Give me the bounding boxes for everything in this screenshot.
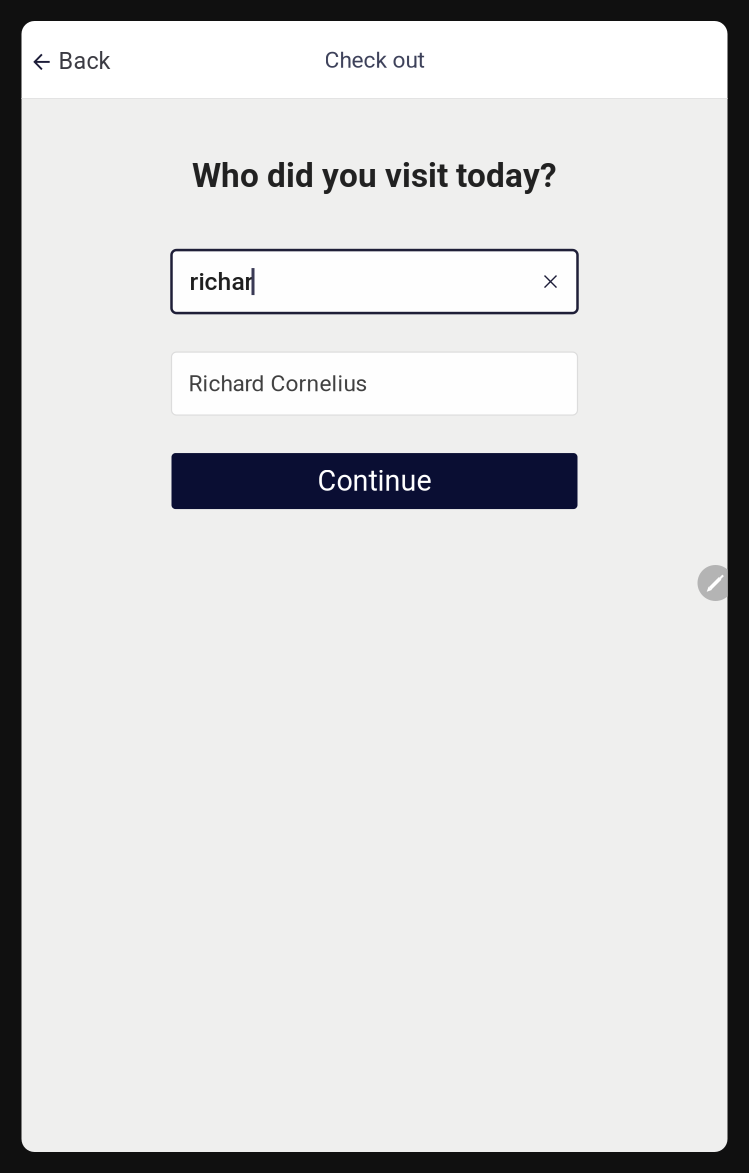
staticText: Richard Cornelius bbox=[188, 370, 367, 397]
staticText: Check out bbox=[324, 47, 424, 73]
button[interactable]: Edit bbox=[697, 565, 733, 601]
staticText: Continue bbox=[317, 464, 431, 498]
button[interactable]: Richard Cornelius bbox=[171, 352, 577, 415]
staticText: Who did you visit today? bbox=[192, 156, 557, 195]
button[interactable]: Back bbox=[21, 31, 122, 89]
staticText: Back bbox=[58, 47, 110, 75]
button[interactable]: Continue bbox=[171, 453, 577, 509]
staticText: richar bbox=[189, 267, 253, 296]
button[interactable]: Clear text bbox=[529, 257, 577, 307]
